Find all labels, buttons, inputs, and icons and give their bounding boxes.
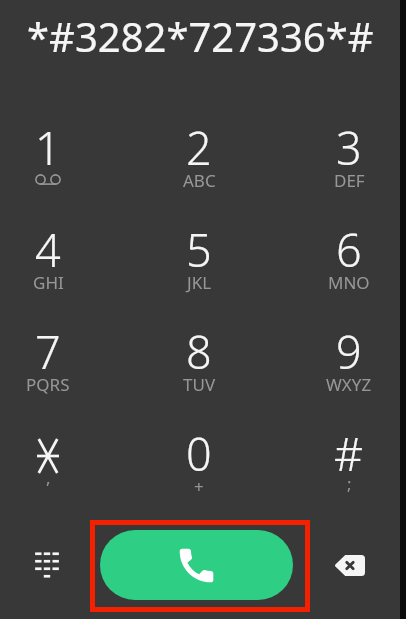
staticText: DEF [334, 169, 365, 192]
button[interactable]: 9 [284, 309, 406, 411]
button[interactable]: , [0, 411, 113, 513]
button[interactable]: # [284, 411, 406, 513]
staticText: ABC [183, 169, 216, 192]
staticText: 8 [186, 321, 212, 382]
staticText: + [194, 475, 204, 498]
staticText: , [46, 466, 51, 489]
button[interactable]: 6 [284, 207, 406, 309]
staticText: 4 [35, 219, 61, 280]
staticText: JKL [187, 271, 212, 294]
button[interactable]: 8 [134, 309, 264, 411]
button[interactable]: 3 [284, 105, 406, 207]
staticText: 0 [186, 423, 212, 484]
staticText: 5 [186, 219, 212, 280]
button[interactable]: Backspace [325, 541, 373, 589]
staticText: WXYZ [326, 373, 372, 396]
staticText: 1 [35, 117, 61, 178]
button[interactable]: Dialpad [23, 541, 71, 589]
staticText: 9 [336, 321, 362, 382]
staticText: ; [347, 472, 352, 495]
button[interactable]: 0 [134, 411, 264, 513]
staticText: 2 [186, 117, 212, 178]
staticText: MNO [328, 271, 370, 294]
staticText: TUV [183, 373, 216, 396]
button[interactable]: 2 [134, 105, 264, 207]
button[interactable]: 4 [0, 207, 113, 309]
staticText: 7 [35, 321, 61, 382]
button[interactable]: 1 [0, 105, 113, 207]
staticText: 3 [336, 117, 362, 178]
button[interactable]: Call [100, 530, 293, 600]
staticText: # [334, 423, 364, 484]
staticText: GHI [33, 271, 64, 294]
staticText: *#3282*727336*# [27, 9, 374, 63]
button[interactable]: 5 [134, 207, 264, 309]
button[interactable]: 7 [0, 309, 113, 411]
staticText: 6 [336, 219, 362, 280]
staticText: PQRS [26, 373, 70, 396]
